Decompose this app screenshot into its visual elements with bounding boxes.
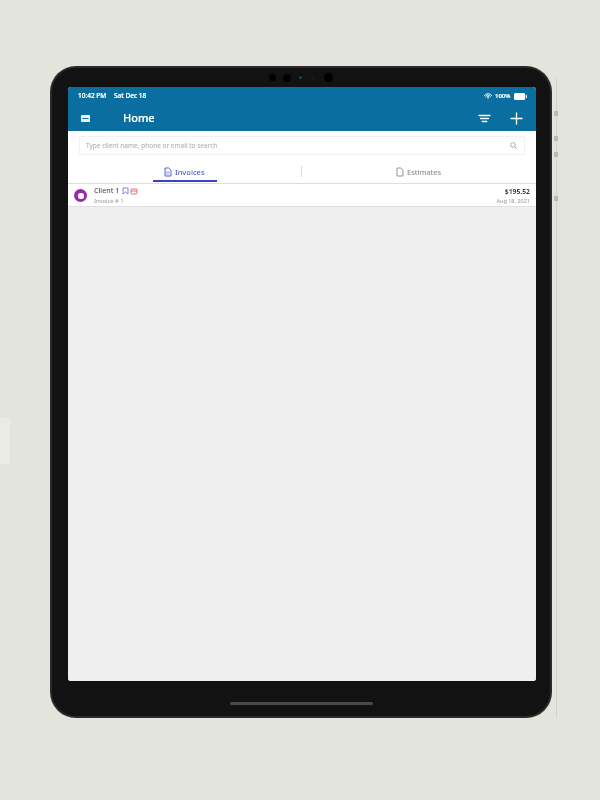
staticText: 10:42 PM [78,91,107,100]
staticText: Invoice # 1 [94,197,124,205]
staticText: Aug 18, 2021 [496,197,530,204]
button[interactable]: Client 1 [68,184,536,206]
staticText: Estimates [407,167,442,177]
staticText: Home [123,110,155,125]
button[interactable]: Estimates [302,160,536,183]
button[interactable]: Open navigation menu [74,107,96,129]
staticText: Type client name, phone or email to sear… [86,141,218,150]
button[interactable]: Type client name, phone or email to sear… [79,136,525,155]
button[interactable]: Invoices [68,160,301,183]
button[interactable]: Filter [473,107,495,129]
staticText: Invoices [175,167,205,177]
staticText: $195.52 [504,187,530,196]
staticText: 100% [495,92,511,100]
staticText: Sat Dec 18 [114,91,147,100]
staticText: Client 1 [94,186,120,196]
button[interactable]: Add new invoice [505,107,527,129]
